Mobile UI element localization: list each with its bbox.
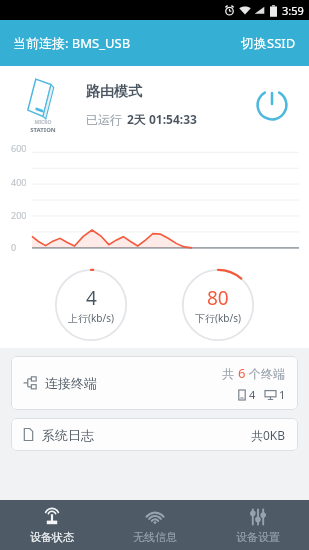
staticText: 400	[11, 176, 27, 188]
staticText: 2天 01:54:33	[127, 111, 197, 127]
staticText: 共0KB	[251, 427, 286, 443]
staticText: 4	[249, 387, 256, 402]
staticText: 已运行	[86, 112, 122, 127]
staticText: 200	[11, 209, 27, 221]
staticText: STATION	[30, 126, 56, 134]
staticText: 6	[238, 364, 246, 382]
button[interactable]: Power	[249, 82, 295, 128]
button[interactable]: 4	[54, 268, 128, 342]
button[interactable]: 切换SSID	[228, 23, 309, 63]
button[interactable]: 连接终端	[11, 356, 298, 410]
button[interactable]: 设备设置	[206, 500, 309, 550]
staticText: 设备状态	[30, 530, 74, 544]
staticText: 当前连接: BMS_USB	[13, 34, 131, 52]
button[interactable]: 设备状态	[0, 500, 103, 550]
staticText: 设备设置	[236, 530, 280, 544]
staticText: 0	[11, 241, 17, 253]
staticText: 1	[279, 387, 286, 402]
staticText: 4	[86, 285, 97, 311]
button[interactable]: 无线信息	[103, 500, 206, 550]
staticText: 路由模式	[86, 83, 142, 101]
staticText: 下行(kb/s)	[195, 311, 241, 325]
staticText: MICRO	[34, 119, 52, 126]
staticText: 共	[222, 365, 238, 381]
staticText: 600	[11, 142, 27, 154]
staticText: 系统日志	[42, 427, 94, 443]
staticText: 切换SSID	[241, 34, 296, 52]
staticText: 80	[207, 285, 229, 311]
staticText: 无线信息	[133, 530, 177, 544]
button[interactable]: 系统日志	[11, 418, 298, 451]
staticText: 连接终端	[45, 375, 97, 391]
button[interactable]: 80	[181, 268, 255, 342]
staticText: 上行(kb/s)	[68, 311, 114, 325]
staticText: 3:59	[282, 3, 304, 18]
staticText: 个终端	[246, 365, 286, 381]
